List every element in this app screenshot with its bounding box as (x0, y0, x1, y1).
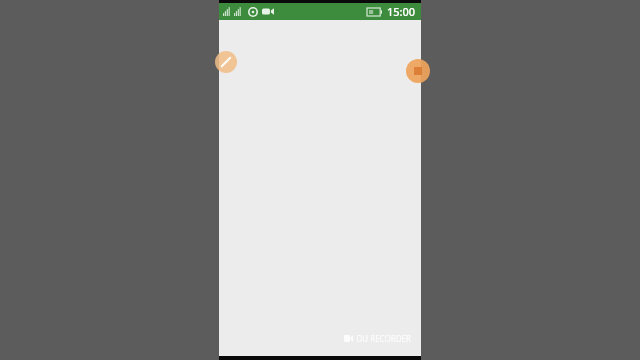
staticText: DU RECORDER (356, 333, 411, 344)
staticText: 15:00 (387, 4, 416, 19)
button[interactable]: Action (406, 59, 430, 83)
button[interactable]: Edit (215, 51, 237, 73)
